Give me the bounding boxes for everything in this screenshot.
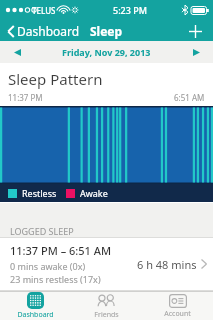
button[interactable]: 11:37 PM – 6:51 AM (0, 238, 213, 290)
staticText: Sleep (90, 23, 123, 39)
button[interactable]: Dashboard (0, 292, 71, 320)
staticText: Friends (94, 310, 119, 320)
staticText: LOGGED SLEEP (10, 225, 74, 237)
staticText: 0 mins awake (0x) (10, 260, 86, 272)
staticText: 11:37 PM (8, 92, 43, 103)
staticText: 11:37 PM – 6:51 AM (10, 243, 112, 258)
staticText: TELUS (32, 5, 56, 16)
button[interactable]: Dashboard (5, 23, 82, 39)
staticText: 6:51 AM (174, 92, 205, 103)
staticText: Account (164, 309, 191, 319)
button[interactable]: Next day (179, 41, 213, 63)
staticText: 6 h 48 mins (137, 257, 197, 272)
staticText: Dashboard (17, 310, 54, 320)
staticText: 23 mins restless (17x) (10, 273, 101, 285)
button[interactable]: Add (185, 21, 205, 41)
staticText: Awake (80, 187, 108, 199)
staticText: Friday, Nov 29, 2013 (62, 46, 151, 58)
button[interactable]: Previous day (0, 41, 34, 63)
button[interactable]: Account (142, 292, 213, 320)
staticText: Sleep Pattern (8, 69, 103, 89)
staticText: Dashboard (17, 23, 80, 39)
button[interactable]: Friends (71, 292, 142, 320)
staticText: Restless (22, 187, 57, 199)
staticText: 5:23 PM (113, 4, 147, 16)
